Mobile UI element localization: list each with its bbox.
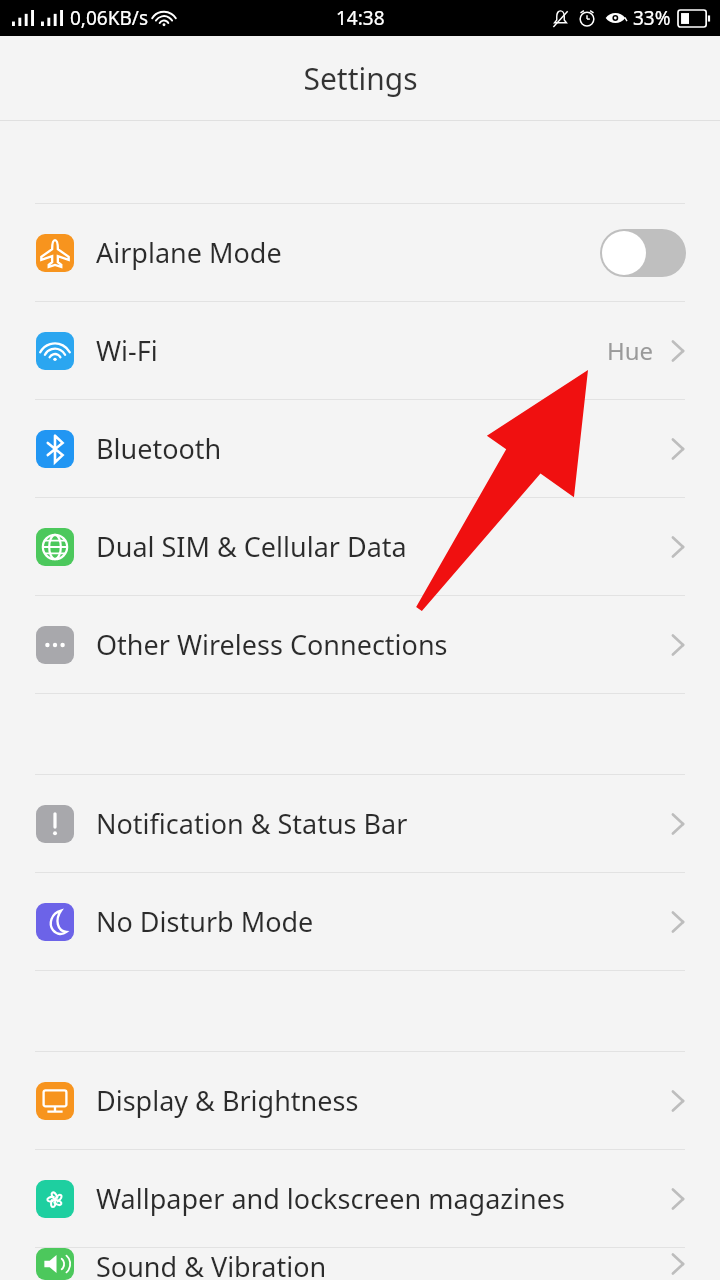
staticText: 33%: [633, 5, 671, 31]
staticText: Display & Brightness: [96, 1082, 359, 1119]
staticText: Settings: [303, 58, 418, 99]
staticText: Notification & Status Bar: [96, 805, 408, 842]
button[interactable]: Wi-Fi: [0, 302, 720, 399]
staticText: Bluetooth: [96, 430, 222, 467]
staticText: Wi-Fi: [96, 332, 158, 369]
button[interactable]: Display & Brightness: [0, 1052, 720, 1149]
button[interactable]: Notification & Status Bar: [0, 775, 720, 872]
button[interactable]: Airplane Mode toggle: [600, 229, 686, 277]
staticText: Dual SIM & Cellular Data: [96, 528, 407, 565]
button[interactable]: Sound & Vibration: [0, 1248, 720, 1280]
staticText: Airplane Mode: [96, 234, 282, 271]
staticText: No Disturb Mode: [96, 903, 314, 940]
staticText: 0,06KB/s: [70, 5, 148, 31]
staticText: Sound & Vibration: [96, 1248, 327, 1280]
button[interactable]: Bluetooth: [0, 400, 720, 497]
button[interactable]: No Disturb Mode: [0, 873, 720, 970]
staticText: 14:38: [336, 5, 385, 31]
staticText: Other Wireless Connections: [96, 626, 448, 663]
staticText: Wallpaper and lockscreen magazines: [96, 1180, 565, 1217]
button[interactable]: Airplane Mode: [0, 204, 720, 301]
button[interactable]: Wallpaper and lockscreen magazines: [0, 1150, 720, 1247]
staticText: Hue: [607, 334, 654, 367]
button[interactable]: Dual SIM & Cellular Data: [0, 498, 720, 595]
button[interactable]: Other Wireless Connections: [0, 596, 720, 693]
